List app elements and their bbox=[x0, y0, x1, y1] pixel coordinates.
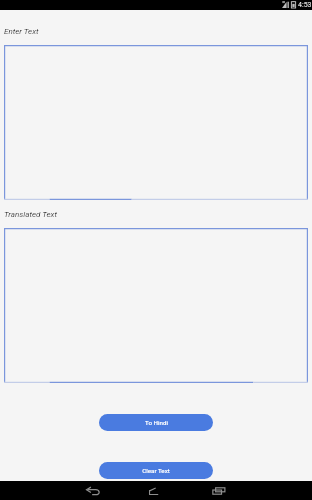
staticText: To Hindi bbox=[145, 419, 168, 426]
button[interactable]: Back bbox=[76, 481, 110, 500]
button[interactable]: Recents bbox=[202, 481, 236, 500]
staticText: 4:53 bbox=[298, 1, 312, 9]
staticText: Enter Text bbox=[4, 27, 39, 36]
button[interactable]: Clear Text bbox=[99, 462, 213, 479]
button[interactable]: Home bbox=[136, 481, 170, 500]
staticText: Clear Text bbox=[142, 467, 170, 474]
other: Signal bbox=[282, 1, 289, 8]
button[interactable]: To Hindi bbox=[99, 414, 213, 431]
staticText: Translated Text bbox=[4, 210, 58, 219]
other: Battery bbox=[291, 1, 296, 8]
